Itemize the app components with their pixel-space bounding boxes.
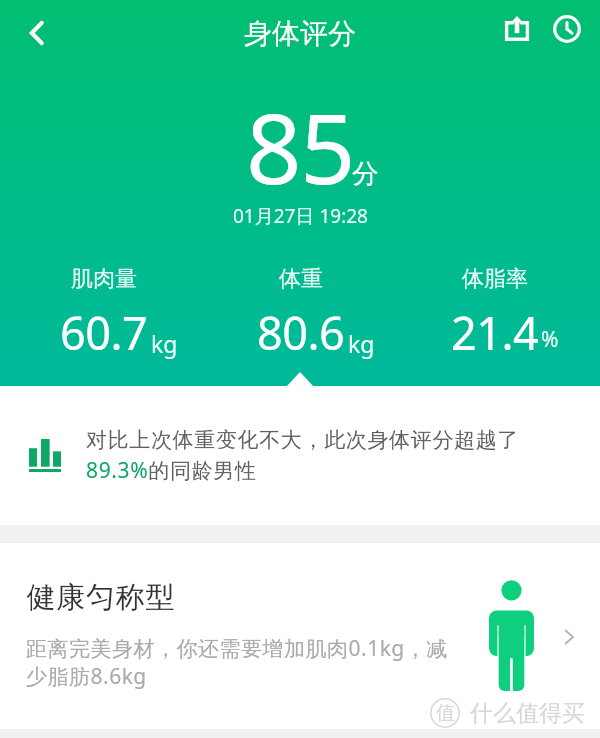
button[interactable]: Open details [552, 620, 586, 654]
button[interactable]: Share [494, 5, 540, 51]
staticText: 健康匀称型 [26, 579, 175, 616]
button[interactable]: Back [13, 10, 59, 56]
button[interactable]: 健康匀称型 [0, 543, 600, 738]
staticText: 分 [352, 157, 379, 191]
staticText: % [541, 325, 559, 354]
staticText: 21.4 [451, 302, 539, 363]
staticText: 身体评分 [244, 16, 356, 51]
staticText: 体脂率 [462, 265, 528, 293]
staticText: 什么值得买 [470, 699, 585, 728]
staticText: 值 [436, 701, 455, 725]
button[interactable]: History [544, 6, 590, 52]
staticText: 对比上次体重变化不大，此次身体评分超越了89.3%的同龄男性 [86, 427, 526, 484]
staticText: 80.6 [257, 302, 345, 363]
staticText: 85 [246, 80, 354, 212]
staticText: 距离完美身材，你还需要增加肌肉0.1kg，减少脂肪8.6kg [26, 634, 456, 690]
staticText: 60.7 [60, 302, 148, 363]
staticText: 体重 [279, 265, 323, 293]
staticText: kg [151, 328, 178, 359]
staticText: 肌肉量 [71, 265, 137, 293]
staticText: 01月27日 19:28 [233, 203, 368, 229]
staticText: kg [348, 328, 375, 359]
